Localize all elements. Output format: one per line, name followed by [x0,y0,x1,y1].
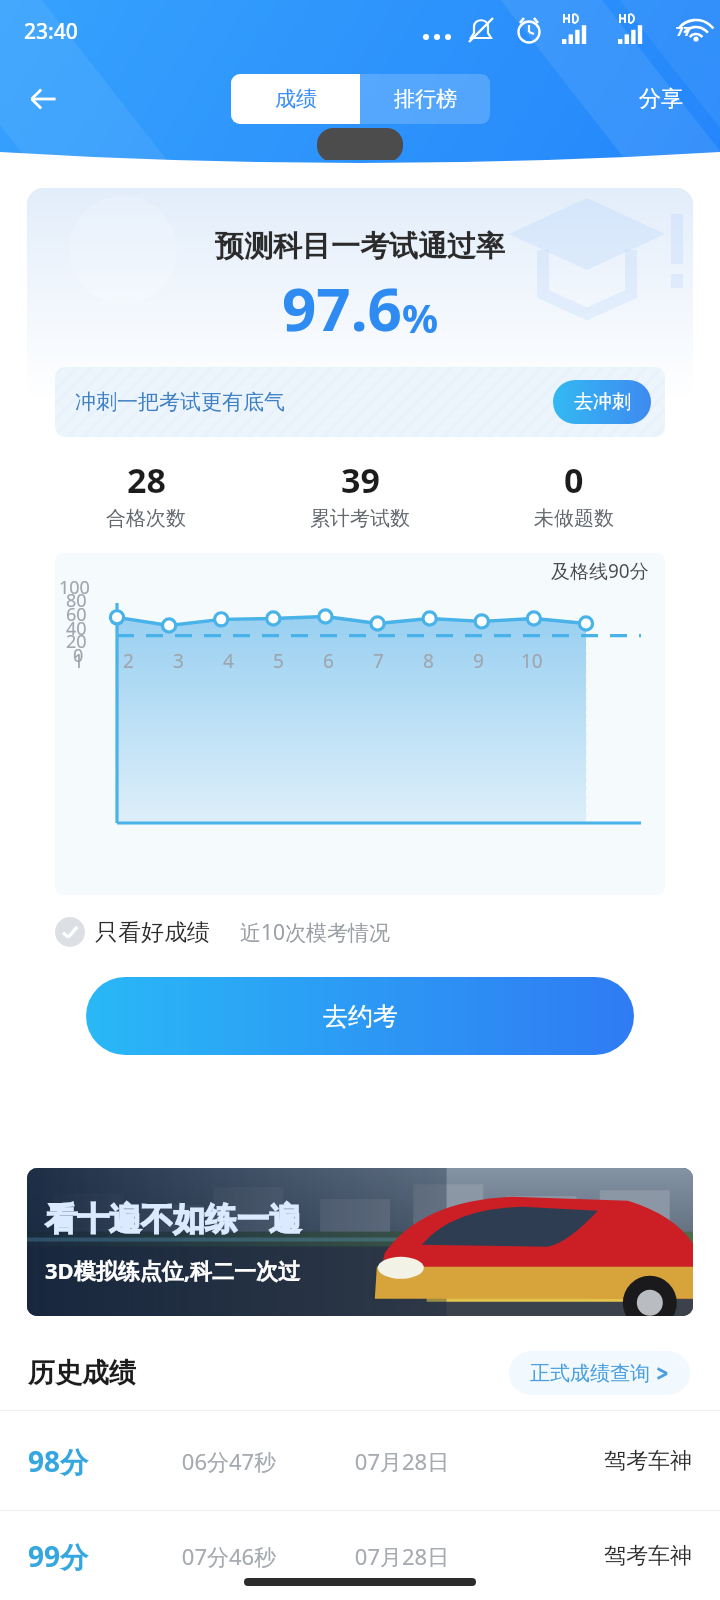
staticText: 未做题数 [534,506,614,531]
button[interactable]: 0 [467,457,681,531]
staticText: 60 [66,602,87,627]
button[interactable]: 只看好成绩 [55,917,210,947]
button[interactable]: Back [14,70,72,128]
staticText: 39 [341,457,380,503]
staticText: 4 [223,648,234,674]
staticText: 分享 [639,85,683,113]
staticText: 7 [373,648,384,674]
staticText: 98分 [28,1442,140,1480]
staticText: 去约考 [323,1001,398,1032]
button[interactable]: 去约考 [86,977,634,1055]
staticText: 只看好成绩 [95,918,210,947]
button[interactable]: 98分 [0,1411,720,1510]
button[interactable]: 广告：3D模拟练点位，科二一次过 [27,1168,693,1316]
button[interactable]: 28 [39,457,253,531]
staticText: 5 [273,648,284,674]
staticText: 及格线90分 [551,558,649,584]
staticText: 排行榜 [394,86,457,112]
staticText: 正式成绩查询 [530,1361,650,1386]
button[interactable]: 39 [253,457,467,531]
button[interactable]: 成绩 [231,74,360,124]
staticText: 07分46秒 [140,1541,318,1571]
staticText: 80 [66,588,87,613]
staticText: 成绩 [275,86,317,112]
button[interactable]: 99分 [0,1511,720,1600]
staticText: 28 [127,457,166,503]
staticText: 近10次模考情况 [240,918,391,947]
staticText: 3 [173,648,184,674]
staticText: 驾考车神 [486,1542,692,1570]
staticText: 0 [73,643,84,668]
staticText: 累计考试数 [310,506,410,531]
staticText: 3D模拟练点位,科二一次过 [45,1255,300,1285]
button[interactable]: 冲刺一把考试更有底气 [55,367,665,437]
button[interactable]: 排行榜 [360,74,490,124]
staticText: 40 [66,616,87,641]
staticText: 23:40 [24,17,78,46]
staticText: 驾考车神 [486,1447,692,1475]
staticText: 去冲刺 [574,390,631,414]
staticText: 10 [521,648,543,674]
staticText: 2 [123,648,134,674]
button[interactable]: 正式成绩查询 [509,1351,690,1395]
staticText: 冲刺一把考试更有底气 [75,389,285,415]
staticText: 07月28日 [318,1446,486,1476]
staticText: 20 [66,629,87,654]
staticText: 07月28日 [318,1541,486,1571]
staticText: 合格次数 [106,506,186,531]
staticText: 1 [73,648,84,674]
staticText: 预测科目一考试通过率 [27,228,693,265]
staticText: 06分47秒 [140,1446,318,1476]
staticText: 77 [676,22,691,40]
staticText: 99分 [28,1537,140,1575]
staticText: 看十遍不如练一遍 [45,1199,301,1239]
staticText: 历史成绩 [28,1356,136,1390]
staticText: % [402,290,439,344]
staticText: 6 [323,648,334,674]
button[interactable]: 去冲刺 [553,380,651,424]
staticText: 100 [59,575,90,600]
staticText: 97.6 [282,267,402,349]
button[interactable]: 分享 [614,70,708,128]
staticText: 8 [423,648,434,674]
staticText: 9 [473,648,484,674]
staticText: 0 [564,457,584,503]
